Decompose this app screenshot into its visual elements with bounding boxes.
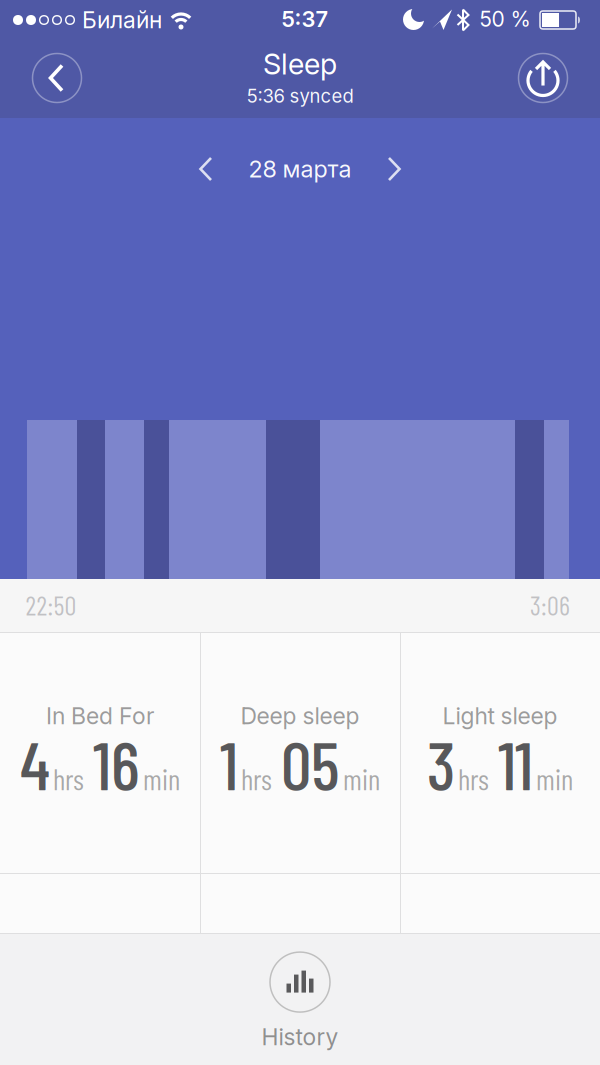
button[interactable]: Next day bbox=[376, 151, 412, 187]
staticText: min bbox=[343, 761, 380, 796]
staticText: History bbox=[261, 1023, 338, 1051]
staticText: 3:06 bbox=[530, 589, 570, 621]
button[interactable]: History bbox=[261, 951, 338, 1051]
staticText: Light sleep bbox=[442, 702, 557, 730]
staticText: Sleep bbox=[263, 46, 337, 82]
staticText: 5:36 synced bbox=[246, 85, 353, 107]
button[interactable]: Previous day bbox=[188, 151, 224, 187]
button[interactable]: Sync bbox=[517, 52, 568, 103]
staticText: 1 bbox=[220, 722, 238, 804]
staticText: 22:50 bbox=[25, 589, 76, 621]
staticText: 3 bbox=[427, 722, 455, 804]
staticText: Билайн bbox=[82, 6, 162, 34]
staticText: In Bed For bbox=[46, 702, 154, 730]
staticText: 50 % bbox=[479, 6, 530, 32]
staticText: hrs bbox=[458, 761, 489, 796]
staticText: hrs bbox=[241, 761, 272, 796]
staticText: 05 bbox=[281, 722, 340, 804]
staticText: min bbox=[536, 761, 573, 796]
staticText: 16 bbox=[93, 722, 140, 804]
staticText: hrs bbox=[53, 761, 84, 796]
staticText: min bbox=[143, 761, 180, 796]
button[interactable]: Back bbox=[31, 52, 82, 103]
staticText: 5:37 bbox=[281, 6, 328, 32]
staticText: 11 bbox=[498, 722, 533, 804]
staticText: 4 bbox=[20, 722, 50, 804]
staticText: Deep sleep bbox=[240, 702, 359, 730]
staticText: 28 марта bbox=[248, 155, 351, 183]
